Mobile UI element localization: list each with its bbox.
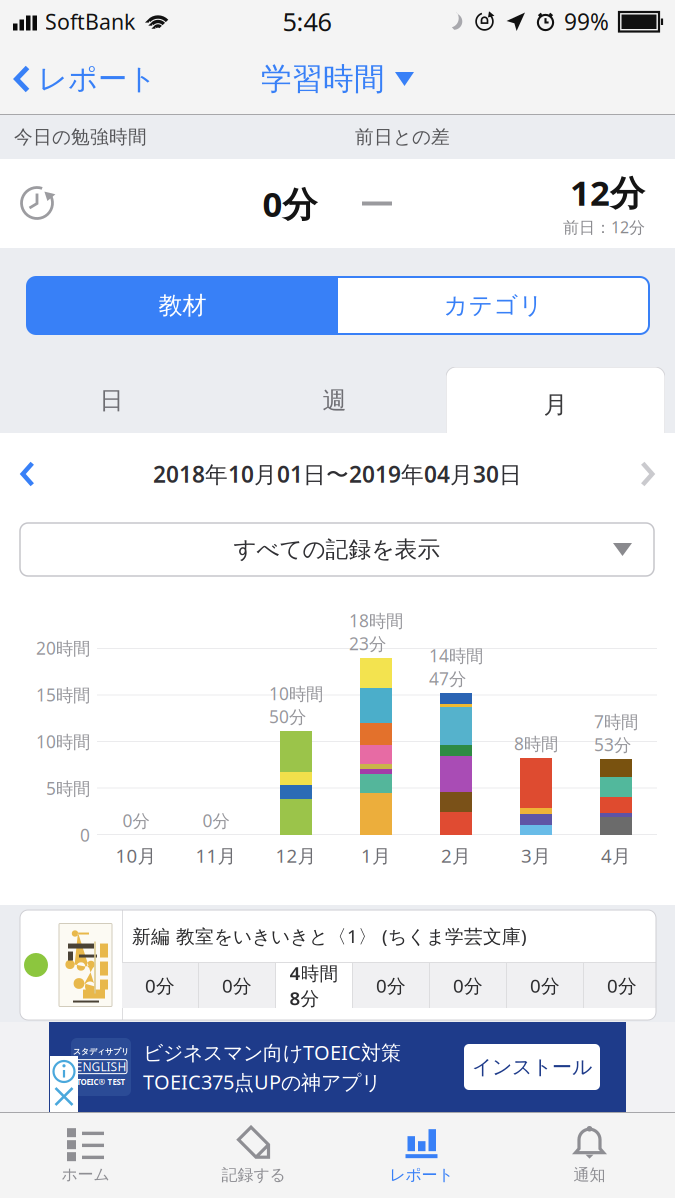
button[interactable]: レポート — [0, 43, 167, 115]
staticText: 0分 — [453, 973, 483, 998]
staticText: カテゴリ — [443, 291, 543, 320]
staticText: SoftBank — [45, 7, 135, 36]
staticText: 2月 — [441, 843, 471, 868]
staticText: 前日：12分 — [563, 216, 645, 238]
staticText: 18時間 23分 — [349, 609, 403, 655]
staticText: 記録する — [221, 1165, 285, 1185]
staticText: 前日との差 — [355, 125, 450, 148]
staticText: レポート — [38, 61, 157, 97]
staticText: 0分 — [202, 809, 229, 832]
staticText: ビジネスマン向けTOEIC対策 — [143, 1039, 401, 1065]
staticText: 2018年10月01日〜2019年04月30日 — [153, 459, 522, 489]
staticText: 5時間 — [46, 777, 90, 800]
staticText: 11月 — [195, 843, 236, 868]
staticText: TOEIC375点UPの神アプリ — [143, 1068, 381, 1095]
staticText: 12分 — [570, 169, 645, 215]
button[interactable]: 前の期間 — [0, 441, 109, 507]
staticText: 10時間 — [36, 730, 90, 753]
staticText: 10月 — [115, 843, 156, 868]
button[interactable]: 新編 教室をいきいきと〈1〉 (ちくま学芸文庫) — [20, 910, 656, 1020]
staticText: 5:46 — [282, 5, 331, 38]
staticText: 0分 — [530, 973, 560, 998]
staticText: 8時間 — [514, 732, 558, 755]
button[interactable]: スタディサプリ — [49, 1022, 626, 1112]
button[interactable]: ホーム — [1, 1112, 169, 1198]
button[interactable]: 日 — [0, 368, 223, 433]
button[interactable]: レポート — [337, 1112, 505, 1198]
staticText: 12月 — [275, 843, 316, 868]
button[interactable]: 学習時間 — [261, 43, 414, 115]
button[interactable]: 週 — [223, 368, 446, 433]
staticText: 7時間 53分 — [594, 710, 638, 756]
staticText: 0 — [80, 823, 90, 846]
staticText: 新編 教室をいきいきと〈1〉 (ちくま学芸文庫) — [132, 924, 527, 948]
staticText: 通知 — [573, 1165, 605, 1185]
staticText: 0分 — [607, 973, 637, 998]
staticText: 0分 — [122, 809, 149, 832]
staticText: 今日の勉強時間 — [14, 125, 147, 148]
button[interactable]: すべての記録を表示 — [20, 523, 654, 576]
staticText: すべての記録を表示 — [233, 536, 440, 563]
button[interactable]: カテゴリ — [338, 277, 649, 334]
staticText: 0分 — [376, 973, 406, 998]
staticText: 15時間 — [36, 683, 90, 706]
staticText: レポート — [389, 1165, 453, 1185]
staticText: 日 — [99, 386, 123, 415]
staticText: TOEIC® TEST — [76, 1077, 125, 1087]
button[interactable]: 通知 — [505, 1112, 673, 1198]
staticText: 週 — [322, 386, 346, 415]
staticText: ENGLISH — [75, 1059, 126, 1074]
button[interactable]: 記録する — [169, 1112, 337, 1198]
staticText: スタディサプリ — [73, 1047, 129, 1057]
staticText: 教材 — [158, 291, 206, 320]
staticText: 3月 — [521, 843, 551, 868]
button[interactable]: 次の期間 — [565, 441, 675, 507]
staticText: 20時間 — [36, 636, 90, 659]
staticText: インストール — [472, 1055, 592, 1079]
button[interactable]: 広告を閉じる — [50, 1056, 78, 1112]
staticText: 4時間 8分 — [289, 961, 338, 1010]
staticText: 学習時間 — [261, 60, 385, 98]
staticText: 0分 — [222, 973, 252, 998]
staticText: 99% — [564, 6, 609, 36]
staticText: 月 — [543, 390, 567, 419]
staticText: 0分 — [262, 180, 317, 226]
staticText: 14時間 47分 — [429, 644, 483, 690]
staticText: 0分 — [145, 973, 175, 998]
staticText: 10時間 50分 — [269, 682, 323, 728]
staticText: 4月 — [601, 843, 631, 868]
staticText: ホーム — [61, 1165, 109, 1184]
button[interactable]: 教材 — [27, 277, 338, 334]
staticText: 1月 — [361, 843, 391, 868]
